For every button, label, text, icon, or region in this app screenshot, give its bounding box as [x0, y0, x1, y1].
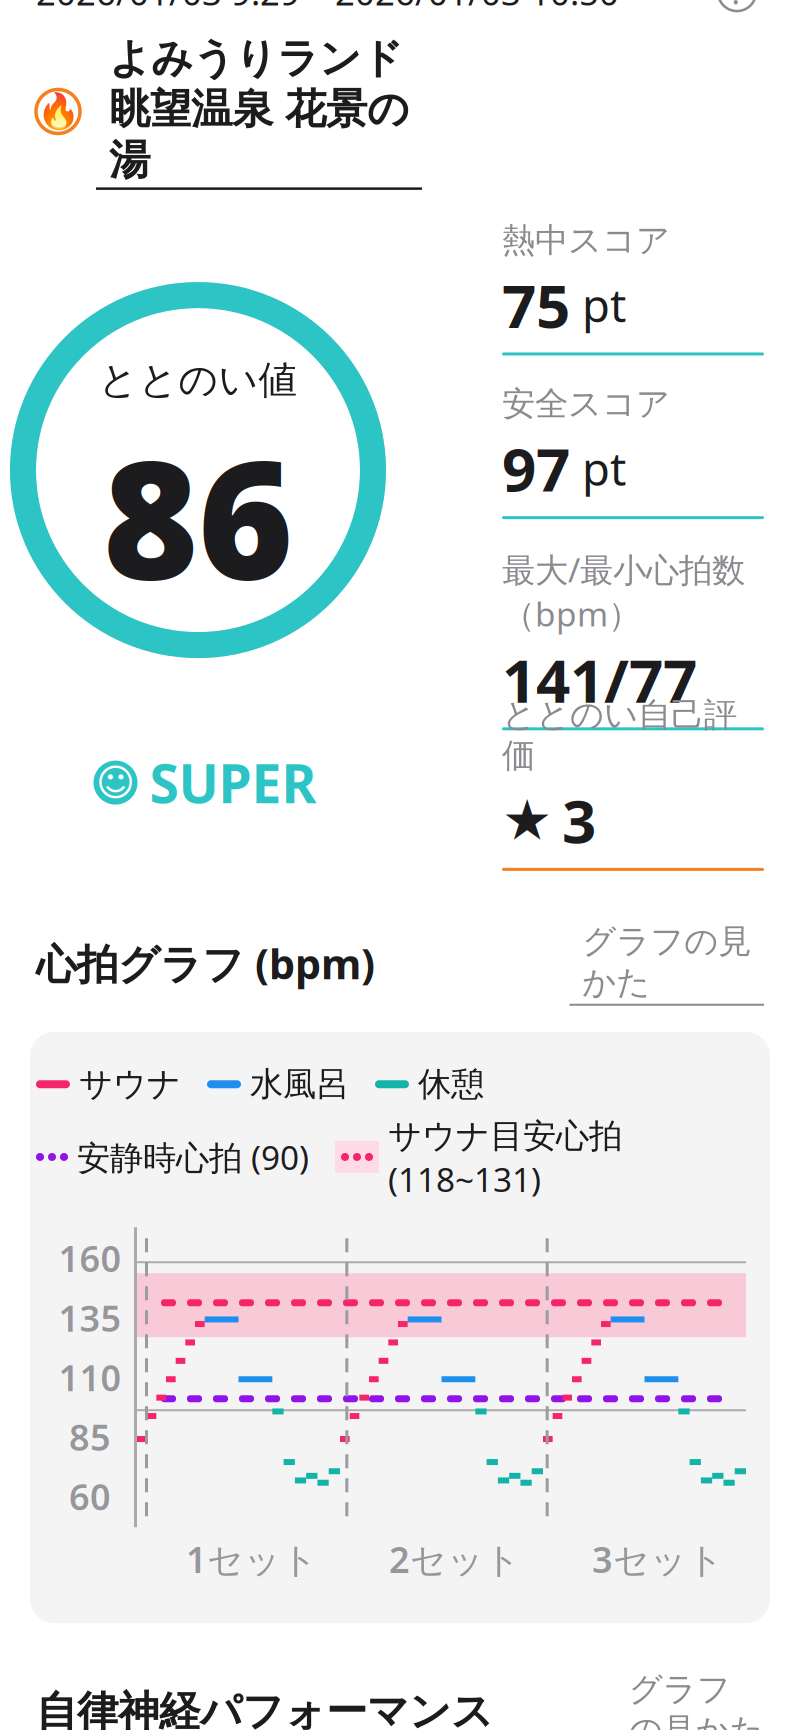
staticText: ?	[730, 0, 744, 13]
staticText: グラフの見かた	[582, 921, 751, 1003]
staticText: 86	[103, 408, 293, 624]
staticText: サウナ	[79, 1064, 181, 1105]
staticText: ★	[502, 788, 552, 852]
staticText: 2セット	[389, 1535, 521, 1583]
staticText: 110	[58, 1353, 121, 1401]
button[interactable]: グラフの見かた	[628, 1661, 764, 1730]
staticText: 3	[562, 780, 596, 860]
staticText: 自律神経パフォーマンス	[36, 1686, 493, 1730]
button[interactable]: ヘルプ	[710, 0, 764, 19]
staticText: 2026/01/03 9:29〜2026/01/03 10:50	[36, 0, 619, 15]
staticText: ととのい値	[98, 356, 297, 404]
staticText: 最大/最小心拍数（bpm）	[502, 547, 745, 636]
button[interactable]: グラフの見かた	[569, 913, 764, 1014]
button[interactable]: ★	[502, 776, 764, 860]
button[interactable]: 🔥	[0, 19, 800, 204]
staticText: 60	[69, 1472, 111, 1520]
staticText: 3セット	[592, 1535, 724, 1583]
staticText: 75	[502, 265, 570, 344]
staticText: SUPER	[149, 747, 316, 818]
staticText: 85	[69, 1413, 111, 1461]
staticText: 135	[58, 1294, 121, 1342]
staticText: 1セット	[186, 1535, 318, 1583]
staticText: 安全スコア	[502, 383, 670, 424]
staticText: pt	[570, 438, 626, 498]
staticText: 🔥	[36, 92, 79, 131]
staticText: 心拍グラフ (bpm)	[36, 936, 375, 991]
staticText: pt	[570, 275, 626, 335]
staticText: 水風呂	[250, 1064, 349, 1105]
staticText: よみうりランド眺望温泉 花景の湯	[109, 33, 409, 185]
staticText: 141/77	[502, 640, 697, 719]
staticText: サウナ目安心拍 (118~131)	[388, 1113, 622, 1201]
staticText: 160	[58, 1234, 121, 1282]
staticText: ととのい自己評価	[502, 694, 737, 776]
staticText: ☺	[96, 761, 135, 804]
staticText: 熱中スコア	[502, 220, 670, 261]
staticText: 休憩	[418, 1064, 484, 1105]
staticText: 97	[502, 428, 570, 508]
staticText: 安静時心拍 (90)	[77, 1135, 309, 1179]
staticText: グラフの見かた	[629, 1669, 764, 1730]
